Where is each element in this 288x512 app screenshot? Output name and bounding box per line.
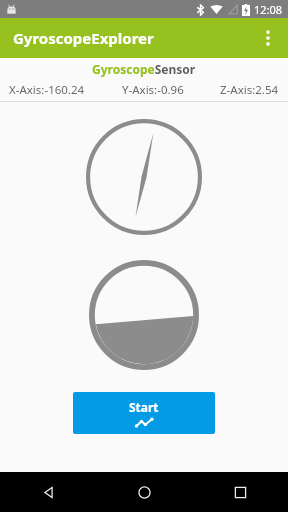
button[interactable]: More options: [248, 18, 288, 58]
button[interactable]: Back: [0, 472, 96, 512]
button[interactable]: Recent apps: [192, 472, 288, 512]
staticText: GyroscopeExplorer: [13, 28, 154, 48]
staticText: Start: [129, 399, 159, 415]
staticText: GyroscopeSensor: [92, 61, 196, 77]
button[interactable]: Start: [73, 392, 215, 434]
button[interactable]: Home: [96, 472, 192, 512]
staticText: X-Axis:-160.24: [9, 82, 85, 98]
staticText: Y-Axis:-0.96: [122, 82, 184, 98]
staticText: 12:08: [254, 2, 283, 17]
staticText: Z-Axis:2.54: [220, 82, 279, 98]
